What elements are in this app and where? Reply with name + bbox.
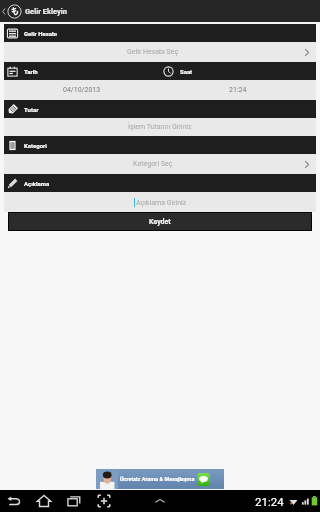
staticText: Kategori	[24, 142, 47, 149]
button[interactable]: Kaydet	[8, 212, 312, 231]
button[interactable]: Gelir Ekleyin, navigate up	[0, 0, 320, 22]
staticText: 21:24	[229, 86, 247, 94]
button[interactable]: Recent apps	[66, 493, 82, 509]
staticText: Gelir Hesabı Seç	[127, 48, 179, 56]
staticText: Tarih	[24, 68, 38, 75]
button[interactable]: Gelir Hesabı Seç	[4, 42, 316, 62]
staticText: Saat	[180, 68, 193, 75]
button[interactable]: Home	[36, 493, 52, 509]
button[interactable]: Advertisement	[96, 469, 224, 489]
staticText: Ücretsiz Arama & Mesajlaşma	[120, 476, 195, 482]
staticText: Açıklama Giriniz	[136, 199, 187, 207]
button[interactable]: İşlem Tutarını Giriniz	[4, 118, 316, 136]
staticText: Tutar	[24, 106, 39, 113]
staticText: İşlem Tutarını Giriniz	[128, 123, 192, 131]
staticText: 21:24	[255, 495, 284, 508]
button[interactable]: Back	[6, 493, 22, 509]
staticText: Kategori Seç	[133, 160, 173, 168]
button[interactable]: 04/10/2013	[4, 80, 160, 100]
staticText: Gelir Hesabı	[24, 30, 58, 37]
button[interactable]: Kategori Seç	[4, 154, 316, 174]
staticText: 04/10/2013	[63, 86, 101, 94]
staticText: Kaydet	[149, 218, 171, 226]
button[interactable]: Açıklama Giriniz	[4, 192, 316, 212]
button[interactable]: Screenshot	[96, 493, 112, 509]
staticText: Açıklama	[24, 180, 50, 187]
button[interactable]: 21:24	[160, 80, 316, 100]
staticText: Gelir Ekleyin	[25, 7, 67, 16]
